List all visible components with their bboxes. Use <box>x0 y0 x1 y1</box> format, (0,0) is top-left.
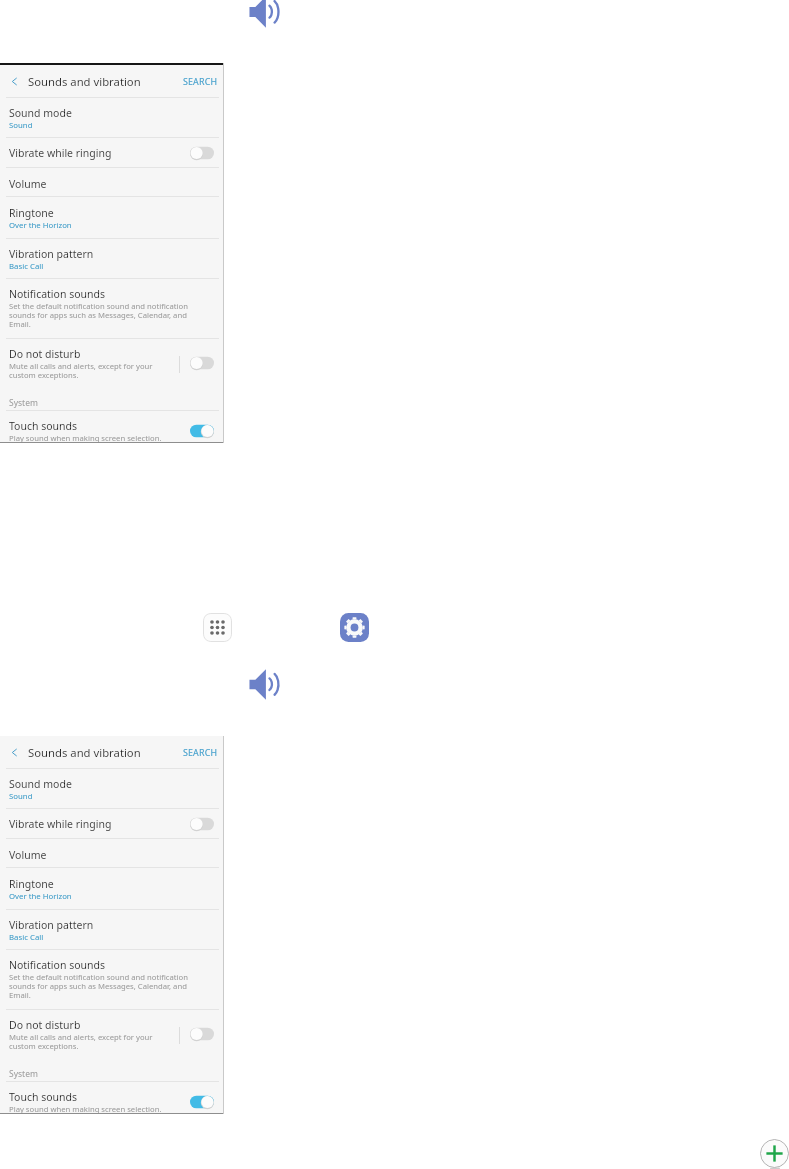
button[interactable]: Notification sounds <box>0 950 224 1009</box>
staticText: Volume <box>9 177 47 191</box>
staticText: Over the Horizon <box>9 220 72 231</box>
staticText: Vibrate while ringing <box>9 146 112 160</box>
button[interactable]: Navigate up <box>6 744 22 760</box>
staticText: Ringtone <box>9 877 54 891</box>
button[interactable]: Touch sounds <box>0 1082 224 1113</box>
staticText: Do not disturb <box>9 1018 81 1032</box>
staticText: Basic Call <box>9 932 44 943</box>
staticText: Volume <box>9 848 47 862</box>
button[interactable]: Vibration pattern <box>0 910 224 949</box>
button[interactable]: Navigate up <box>6 73 22 89</box>
staticText: System <box>9 1068 38 1080</box>
staticText: System <box>9 397 38 409</box>
button[interactable]: Off <box>190 145 214 161</box>
staticText: Vibrate while ringing <box>9 817 112 831</box>
button[interactable]: Volume <box>0 839 224 867</box>
button[interactable]: Add <box>760 1139 789 1168</box>
staticText: Touch sounds <box>9 419 78 433</box>
staticText: Set the default notification sound and n… <box>9 301 200 330</box>
staticText: Play sound when making screen selection. <box>9 433 162 442</box>
button[interactable]: Sound mode <box>0 769 224 808</box>
button[interactable]: Notification sounds <box>0 279 224 338</box>
staticText: Over the Horizon <box>9 891 72 902</box>
staticText: Mute all calls and alerts, except for yo… <box>9 361 180 381</box>
staticText: Do not disturb <box>9 347 81 361</box>
button[interactable]: On <box>190 1094 214 1110</box>
button[interactable]: SEARCH <box>182 742 219 762</box>
button[interactable]: On <box>190 423 214 439</box>
button[interactable]: Vibrate while ringing <box>0 809 224 838</box>
button[interactable]: Apps <box>203 613 232 642</box>
staticText: Vibration pattern <box>9 247 94 261</box>
button[interactable]: Vibration pattern <box>0 239 224 278</box>
button[interactable]: Do not disturb <box>0 1010 224 1060</box>
staticText: Vibration pattern <box>9 918 94 932</box>
button[interactable]: Ringtone <box>0 868 224 909</box>
staticText: Notification sounds <box>9 287 106 301</box>
button[interactable]: Volume <box>0 168 224 196</box>
button[interactable]: SEARCH <box>182 71 219 91</box>
button[interactable]: Settings <box>340 613 369 642</box>
button[interactable]: Do not disturb <box>0 339 224 389</box>
button[interactable]: Off <box>190 816 214 832</box>
staticText: Sound <box>9 120 33 131</box>
staticText: Set the default notification sound and n… <box>9 972 200 1001</box>
button[interactable]: Touch sounds <box>0 411 224 442</box>
staticText: Touch sounds <box>9 1090 78 1104</box>
staticText: Basic Call <box>9 261 44 272</box>
button[interactable]: Off <box>190 1026 214 1042</box>
staticText: Play sound when making screen selection. <box>9 1104 162 1113</box>
staticText: Sounds and vibration <box>28 745 141 760</box>
staticText: Sound mode <box>9 106 72 120</box>
staticText: Notification sounds <box>9 958 106 972</box>
staticText: Sounds and vibration <box>28 74 141 89</box>
button[interactable]: Vibrate while ringing <box>0 138 224 167</box>
staticText: Sound <box>9 791 33 802</box>
button[interactable]: Sound mode <box>0 98 224 137</box>
button[interactable]: Off <box>190 355 214 371</box>
staticText: SEARCH <box>183 75 218 87</box>
staticText: Mute all calls and alerts, except for yo… <box>9 1032 180 1052</box>
staticText: Ringtone <box>9 206 54 220</box>
staticText: SEARCH <box>183 746 218 758</box>
staticText: Sound mode <box>9 777 72 791</box>
button[interactable]: Ringtone <box>0 197 224 238</box>
